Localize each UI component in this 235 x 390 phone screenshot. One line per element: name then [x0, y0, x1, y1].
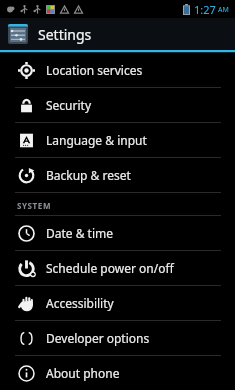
- staticText: 1:27: [194, 2, 216, 17]
- staticText: Language & input: [46, 132, 147, 148]
- staticText: Security: [46, 97, 92, 113]
- button[interactable]: Language & input: [0, 123, 235, 157]
- staticText: Schedule power on/off: [46, 260, 174, 276]
- button[interactable]: Schedule power on/off: [0, 251, 235, 285]
- button[interactable]: Backup & reset: [0, 158, 235, 192]
- staticText: Developer options: [46, 330, 150, 346]
- button[interactable]: Settings: [0, 18, 235, 50]
- staticText: Accessibility: [46, 295, 114, 311]
- staticText: SYSTEM: [17, 200, 52, 211]
- staticText: Date & time: [46, 225, 114, 241]
- button[interactable]: Developer options: [0, 321, 235, 355]
- button[interactable]: Security: [0, 88, 235, 122]
- button[interactable]: Location services: [0, 53, 235, 87]
- button[interactable]: About phone: [0, 356, 235, 390]
- staticText: Location services: [46, 62, 143, 78]
- staticText: AM: [218, 5, 229, 15]
- staticText: About phone: [46, 365, 120, 381]
- staticText: Settings: [38, 25, 92, 44]
- button[interactable]: Accessibility: [0, 286, 235, 320]
- button[interactable]: Date & time: [0, 216, 235, 250]
- staticText: Backup & reset: [46, 167, 131, 183]
